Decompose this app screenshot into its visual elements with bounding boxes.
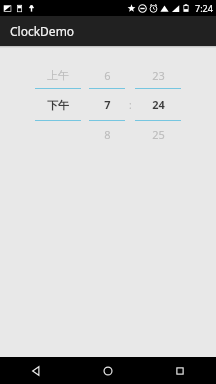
staticText: 7 <box>104 97 111 112</box>
staticText: 下午 <box>47 98 69 112</box>
staticText: : <box>129 98 132 112</box>
staticText: 8 <box>104 127 111 142</box>
staticText: 24 <box>152 97 165 112</box>
staticText: 7:24 <box>195 2 213 14</box>
staticText: 6 <box>104 68 111 83</box>
staticText: 23 <box>152 68 165 83</box>
button[interactable]: AM PM picker <box>35 62 81 147</box>
staticText: 25 <box>152 127 165 142</box>
staticText: ClockDemo <box>10 23 75 39</box>
staticText: 上午 <box>47 68 69 82</box>
button[interactable]: Recent apps <box>144 357 216 384</box>
button[interactable]: Hour picker <box>89 62 125 147</box>
button[interactable]: Minute picker <box>135 62 181 147</box>
button[interactable]: Back <box>0 357 72 384</box>
button[interactable]: Home <box>72 357 144 384</box>
